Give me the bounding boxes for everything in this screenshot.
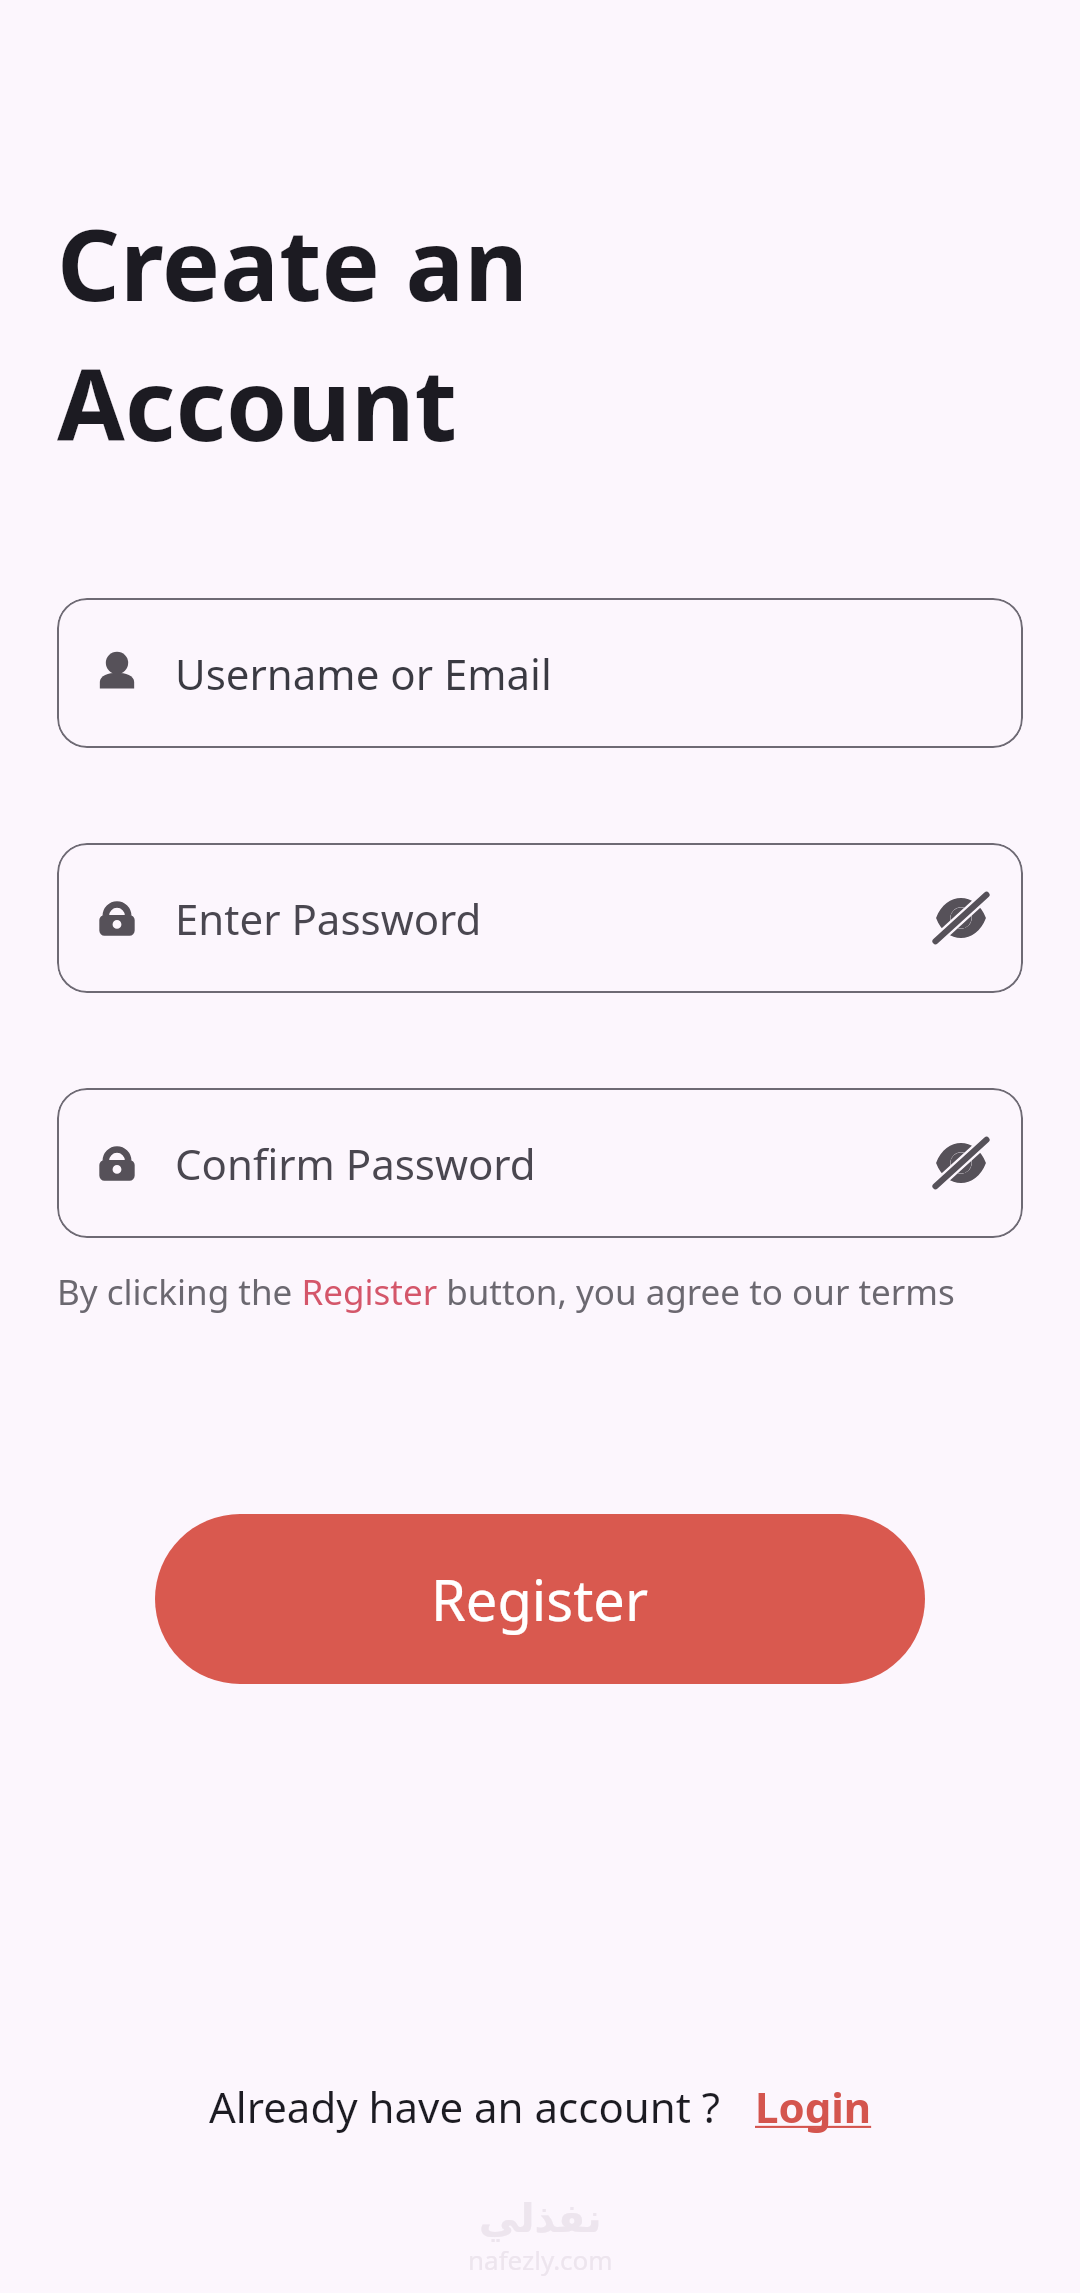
other: Username [91, 647, 143, 699]
button[interactable]: Register [155, 1514, 925, 1684]
staticText: Login [755, 2078, 872, 2135]
staticText: Create an Account [57, 196, 528, 470]
button[interactable]: Username [57, 598, 1023, 748]
button[interactable]: Login [755, 2078, 872, 2135]
staticText: nafezly.com [468, 2242, 613, 2277]
button[interactable]: Show password [929, 886, 993, 950]
staticText: Username or Email [175, 645, 993, 702]
staticText: Enter Password [175, 890, 929, 947]
staticText: نفذلي [479, 2195, 602, 2242]
button[interactable]: Confirm password [57, 1088, 1023, 1238]
staticText: By clicking the Register button, you agr… [57, 1268, 1023, 1316]
button[interactable]: Password [57, 843, 1023, 993]
other: Confirm password [91, 1137, 143, 1189]
other: Password [91, 892, 143, 944]
staticText: Register [431, 1561, 649, 1637]
staticText: Confirm Password [175, 1135, 929, 1192]
button[interactable]: Show confirm password [929, 1131, 993, 1195]
staticText: Already have an account ? [209, 2078, 721, 2135]
